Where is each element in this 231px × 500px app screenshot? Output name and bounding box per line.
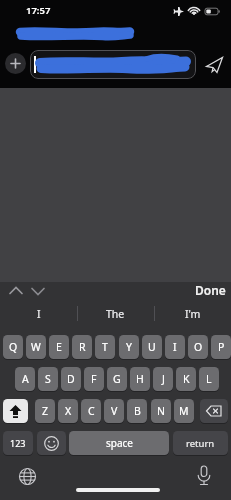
button[interactable]: O xyxy=(188,335,208,359)
button[interactable] xyxy=(3,399,28,423)
staticText: S xyxy=(45,372,51,386)
button[interactable] xyxy=(18,467,37,486)
button[interactable]: I'm xyxy=(154,301,231,327)
staticText: C xyxy=(88,404,95,418)
staticText: Q xyxy=(9,340,18,354)
button[interactable]: U xyxy=(142,335,162,359)
button[interactable]: H xyxy=(130,367,150,391)
staticText: O xyxy=(194,340,203,354)
button[interactable]: T xyxy=(95,335,115,359)
staticText: 17:57 xyxy=(26,4,51,17)
button[interactable]: J xyxy=(153,367,173,391)
button[interactable] xyxy=(205,56,225,75)
staticText: A xyxy=(22,372,29,386)
staticText: R xyxy=(79,340,86,354)
button[interactable]: D xyxy=(61,367,81,391)
staticText: H xyxy=(136,372,144,386)
button[interactable] xyxy=(28,283,48,299)
button[interactable]: return xyxy=(173,431,228,455)
staticText: I xyxy=(173,340,177,354)
staticText: P xyxy=(218,340,225,354)
staticText: Z xyxy=(42,404,49,418)
button[interactable]: E xyxy=(49,335,69,359)
button[interactable]: B xyxy=(127,399,147,423)
staticText: 123 xyxy=(10,437,26,449)
button[interactable]: 123 xyxy=(3,431,33,455)
button[interactable]: N xyxy=(151,399,171,423)
staticText: F xyxy=(91,372,97,386)
button[interactable]: The xyxy=(77,301,154,327)
button[interactable] xyxy=(5,53,26,74)
button[interactable]: I xyxy=(0,301,77,327)
button[interactable]: V xyxy=(104,399,124,423)
button[interactable]: G xyxy=(107,367,127,391)
staticText: E xyxy=(56,340,62,354)
button[interactable]: R xyxy=(72,335,92,359)
button[interactable]: space xyxy=(69,431,169,455)
button[interactable] xyxy=(30,50,196,79)
staticText: U xyxy=(148,340,156,354)
button[interactable]: W xyxy=(26,335,46,359)
staticText: T xyxy=(102,340,108,354)
staticText: B xyxy=(134,404,141,418)
button[interactable]: I xyxy=(165,335,185,359)
button[interactable]: A xyxy=(15,367,35,391)
button[interactable] xyxy=(196,465,212,487)
button[interactable]: Z xyxy=(35,399,55,423)
staticText: Done xyxy=(195,282,226,298)
button[interactable]: Y xyxy=(119,335,139,359)
staticText: W xyxy=(31,340,41,354)
staticText: Y xyxy=(126,340,132,354)
staticText: return xyxy=(186,437,215,450)
button[interactable]: S xyxy=(38,367,58,391)
staticText: I'm xyxy=(185,307,201,321)
staticText: The xyxy=(106,307,125,321)
button[interactable] xyxy=(37,431,66,455)
button[interactable]: L xyxy=(199,367,219,391)
button[interactable]: P xyxy=(211,335,231,359)
staticText: space xyxy=(106,436,133,450)
button[interactable]: K xyxy=(176,367,196,391)
staticText: N xyxy=(157,404,165,418)
staticText: L xyxy=(206,372,212,386)
staticText: D xyxy=(67,372,75,386)
staticText: V xyxy=(111,404,118,418)
button[interactable]: F xyxy=(84,367,104,391)
staticText: G xyxy=(113,372,121,386)
button[interactable]: Done xyxy=(195,282,226,298)
staticText: I xyxy=(37,307,41,321)
staticText: K xyxy=(183,372,190,386)
button[interactable]: X xyxy=(58,399,78,423)
button[interactable] xyxy=(6,283,26,299)
button[interactable]: Q xyxy=(3,335,23,359)
button[interactable]: M xyxy=(174,399,194,423)
button[interactable] xyxy=(200,399,228,423)
staticText: M xyxy=(179,404,189,418)
button[interactable]: C xyxy=(81,399,101,423)
staticText: X xyxy=(65,404,72,418)
staticText: J xyxy=(162,372,165,386)
